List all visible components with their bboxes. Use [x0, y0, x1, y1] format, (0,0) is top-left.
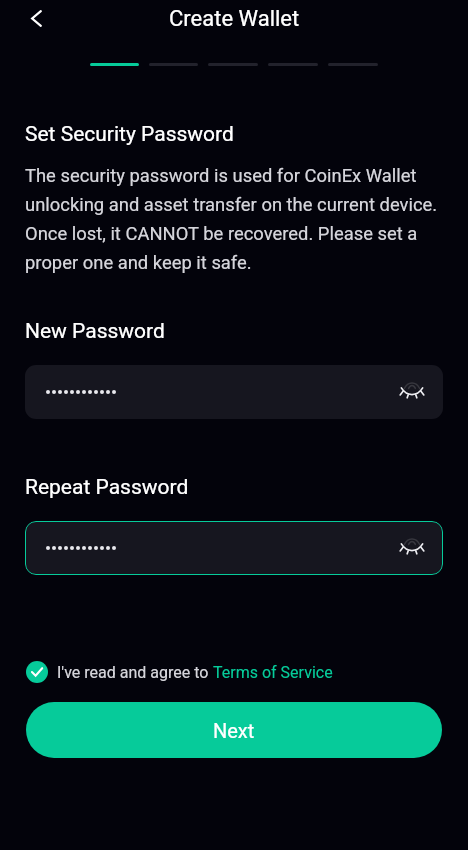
staticText: Repeat Password	[25, 475, 189, 500]
staticText: The security password is used for CoinEx…	[25, 159, 447, 275]
button[interactable]: Next	[26, 702, 442, 758]
button[interactable]: Show password	[25, 521, 443, 575]
button[interactable]: Show password	[25, 365, 443, 419]
staticText: Create Wallet	[169, 6, 300, 32]
staticText: Set Security Password	[25, 122, 234, 147]
button[interactable]: Back	[16, 0, 56, 38]
staticText: New Password	[25, 319, 165, 344]
staticText: Next	[213, 719, 255, 742]
button[interactable]: Show password	[396, 530, 428, 562]
button[interactable]: Show password	[396, 374, 428, 406]
button[interactable]: Terms of Service	[213, 663, 333, 682]
staticText: I've read and agree to	[57, 663, 213, 682]
button[interactable]: I've read and agree to	[26, 661, 333, 683]
